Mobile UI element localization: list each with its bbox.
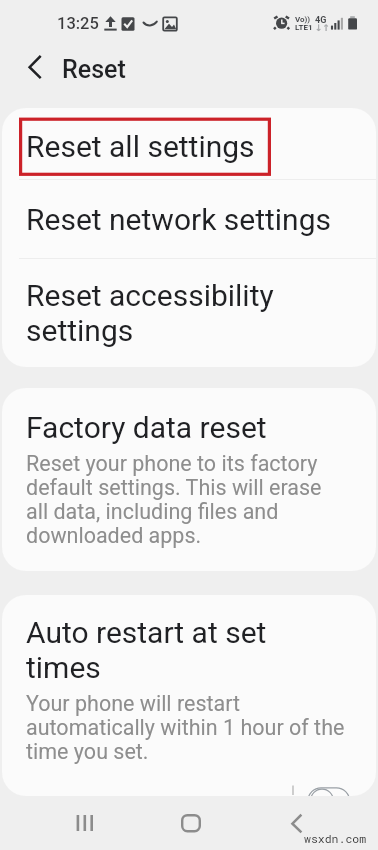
- staticText: 4G: [315, 15, 327, 26]
- button[interactable]: Back: [260, 796, 334, 850]
- button[interactable]: Auto restart at set times: [2, 595, 376, 764]
- staticText: 13:25: [57, 14, 99, 33]
- button[interactable]: Reset all settings: [2, 108, 376, 179]
- button[interactable]: Navigate up: [11, 45, 57, 91]
- button[interactable]: Factory data reset: [2, 388, 376, 548]
- staticText: Reset your phone to its factory default …: [26, 452, 332, 548]
- button[interactable]: Reset network settings: [2, 180, 376, 258]
- button[interactable]: Recent apps: [48, 796, 122, 850]
- staticText: Reset all settings: [26, 129, 255, 164]
- staticText: Reset network settings: [26, 202, 332, 237]
- staticText: Vo)) LTE1: [295, 15, 313, 32]
- staticText: ↓↑: [315, 23, 331, 33]
- staticText: Reset accessibility settings: [26, 278, 348, 348]
- staticText: wsxdn.com: [304, 833, 367, 846]
- button[interactable]: Reset accessibility settings: [2, 259, 376, 367]
- staticText: Auto restart at set times: [26, 615, 346, 685]
- staticText: Reset: [62, 55, 126, 84]
- button[interactable]: Home: [154, 796, 228, 850]
- staticText: Factory data reset: [26, 410, 267, 445]
- staticText: Your phone will restart automatically wi…: [26, 692, 346, 764]
